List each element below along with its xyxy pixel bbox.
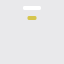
button[interactable]	[27, 16, 36, 20]
